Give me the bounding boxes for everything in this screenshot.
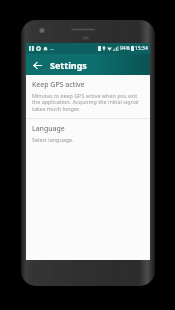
staticText: Language: [32, 124, 65, 134]
button[interactable]: Navigate up: [29, 57, 45, 73]
staticText: 94%: [120, 45, 130, 52]
button[interactable]: Language: [26, 119, 150, 148]
staticText: …: [50, 45, 54, 52]
staticText: Settings: [50, 59, 87, 71]
staticText: 15:34: [135, 45, 148, 52]
staticText: Select language.: [32, 136, 74, 143]
button[interactable]: Keep GPS active: [26, 75, 150, 118]
staticText: Minutes to keep GPS active when you exit…: [32, 92, 145, 113]
staticText: Keep GPS active: [32, 80, 85, 90]
